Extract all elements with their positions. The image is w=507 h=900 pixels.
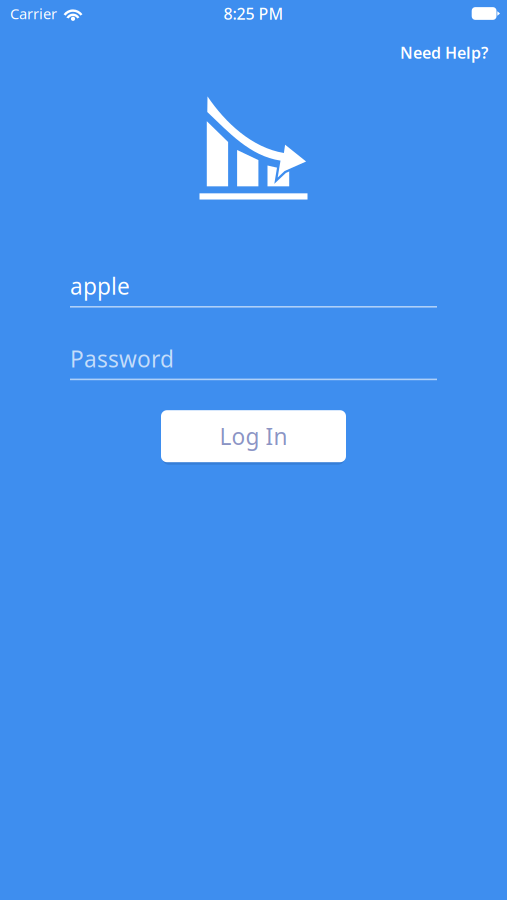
staticText: Need Help? <box>400 42 488 63</box>
staticText: 8:25 PM <box>223 3 283 24</box>
staticText: Carrier <box>10 4 57 23</box>
staticText: Password <box>70 343 174 374</box>
button[interactable]: Need Help? <box>390 31 498 70</box>
button[interactable]: Log In <box>161 408 346 464</box>
staticText: Log In <box>219 421 287 451</box>
staticText: apple <box>70 271 130 301</box>
